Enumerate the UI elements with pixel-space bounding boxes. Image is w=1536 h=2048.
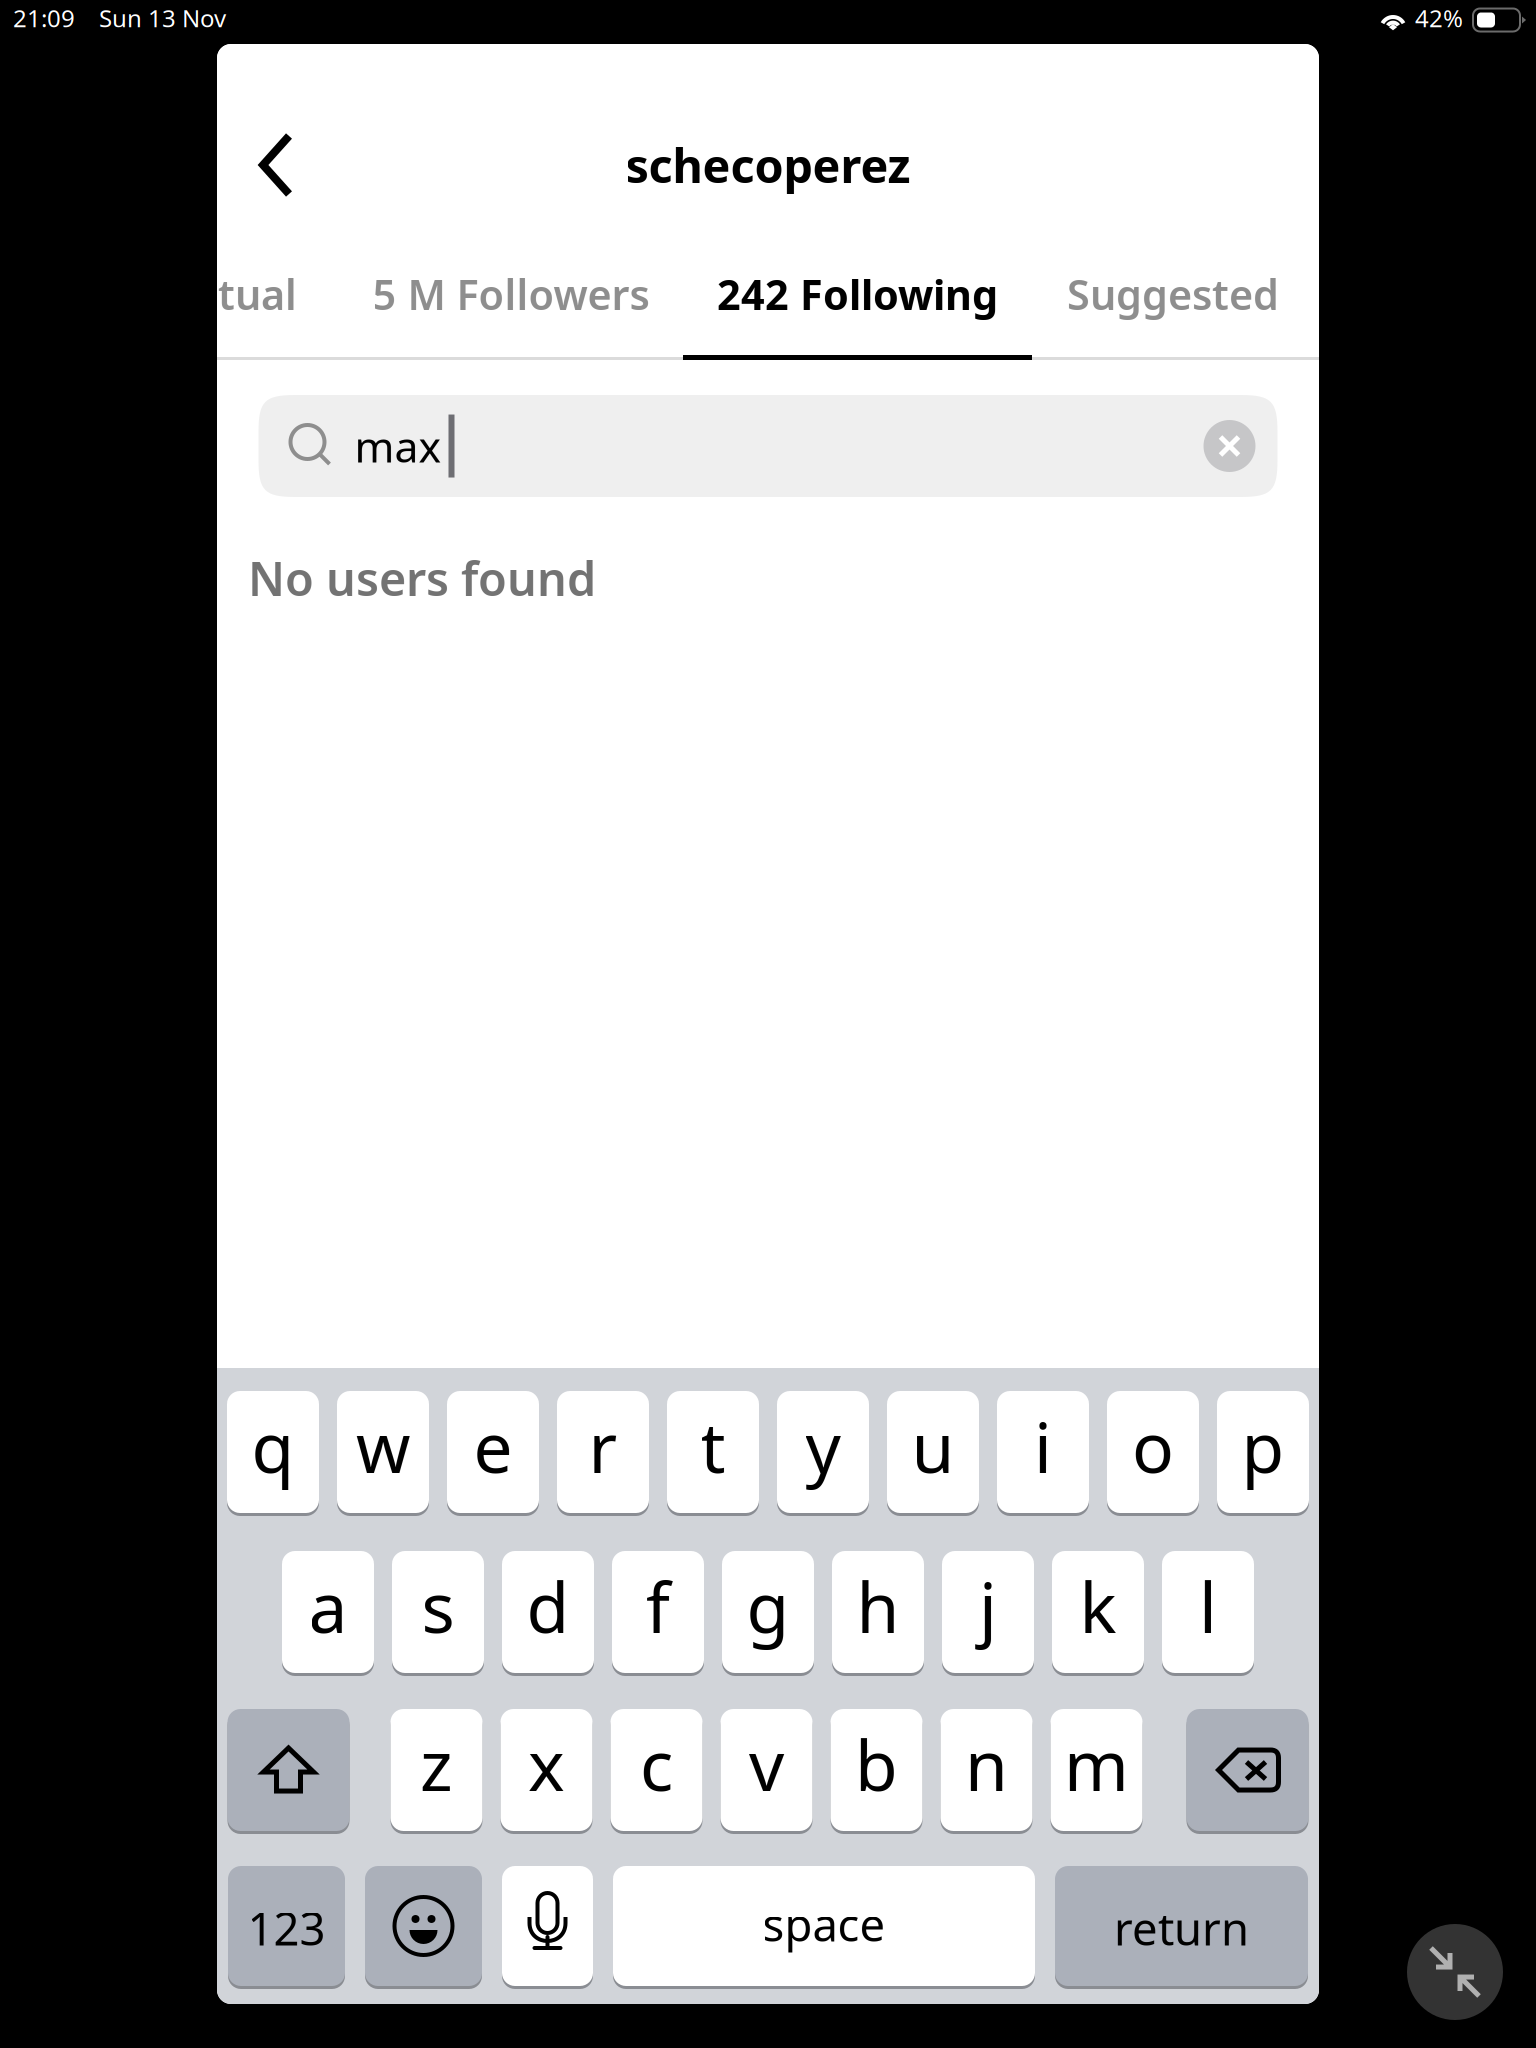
staticText: z	[420, 1718, 453, 1810]
button[interactable]: return	[1055, 1864, 1308, 1987]
button[interactable]: e	[447, 1389, 539, 1514]
staticText: m	[1064, 1718, 1129, 1810]
button[interactable]: p	[1217, 1389, 1309, 1514]
button[interactable]: x	[500, 1707, 592, 1832]
button[interactable]: v	[720, 1707, 812, 1832]
button[interactable]	[227, 1707, 349, 1832]
staticText: 42%	[1415, 2, 1463, 34]
staticText: u	[911, 1400, 954, 1492]
staticText: Suggested	[1067, 267, 1279, 321]
button[interactable]: w	[337, 1389, 429, 1514]
staticText: w	[356, 1400, 410, 1492]
staticText: 21:09	[13, 2, 75, 34]
staticText: o	[1132, 1400, 1174, 1492]
button[interactable]: o	[1107, 1389, 1199, 1514]
staticText: s	[421, 1560, 454, 1652]
button[interactable]: 242 Following	[683, 240, 1032, 348]
staticText: 123	[247, 1898, 325, 1958]
button[interactable]: k	[1052, 1549, 1144, 1674]
button[interactable]	[365, 1864, 482, 1987]
staticText: i	[1034, 1400, 1052, 1492]
button[interactable]: t	[667, 1389, 759, 1514]
staticText: c	[640, 1718, 673, 1810]
button[interactable]: r	[557, 1389, 649, 1514]
staticText: l	[1199, 1560, 1217, 1652]
button[interactable]: u	[887, 1389, 979, 1514]
staticText: 242 Following	[717, 267, 998, 321]
button[interactable]: l	[1162, 1549, 1254, 1674]
staticText: d	[526, 1560, 569, 1652]
button[interactable]: Back	[235, 122, 321, 208]
staticText: 5 M Followers	[372, 267, 649, 321]
button[interactable]: j	[942, 1549, 1034, 1674]
staticText: g	[746, 1560, 789, 1652]
button[interactable]: a	[282, 1549, 374, 1674]
button[interactable]: n	[940, 1707, 1032, 1832]
staticText: v	[749, 1718, 784, 1810]
button[interactable]: g	[722, 1549, 814, 1674]
staticText: No users found	[248, 547, 596, 609]
button[interactable]: d	[502, 1549, 594, 1674]
button[interactable]: q	[227, 1389, 319, 1514]
staticText: max	[354, 418, 441, 474]
staticText: Sun 13 Nov	[99, 2, 226, 34]
staticText: schecoperez	[625, 134, 910, 196]
button[interactable]: space	[613, 1864, 1035, 1987]
staticText: b	[855, 1718, 898, 1810]
staticText: r	[588, 1400, 617, 1492]
staticText: y	[805, 1400, 840, 1492]
button[interactable]	[502, 1864, 593, 1987]
button[interactable]: z	[390, 1707, 482, 1832]
staticText: t	[700, 1400, 725, 1492]
button[interactable]: Exit full screen	[1407, 1924, 1503, 2020]
staticText: return	[1114, 1898, 1249, 1958]
staticText: k	[1079, 1560, 1116, 1652]
staticText: j	[979, 1560, 997, 1652]
button[interactable]: 123	[228, 1864, 345, 1987]
button[interactable]: i	[997, 1389, 1089, 1514]
staticText: x	[528, 1718, 565, 1810]
staticText: space	[762, 1894, 885, 1954]
button[interactable]: f	[612, 1549, 704, 1674]
button[interactable]: b	[830, 1707, 922, 1832]
button[interactable]: Clear search	[1199, 416, 1259, 476]
button[interactable]: y	[777, 1389, 869, 1514]
button[interactable]: utual	[157, 240, 297, 348]
button[interactable]: 5 M Followers	[361, 240, 661, 348]
button[interactable]	[1186, 1707, 1308, 1832]
staticText: f	[646, 1560, 670, 1652]
staticText: utual	[192, 267, 297, 321]
staticText: e	[473, 1400, 512, 1492]
button[interactable]: s	[392, 1549, 484, 1674]
staticText: h	[856, 1560, 899, 1652]
staticText: n	[965, 1718, 1008, 1810]
button[interactable]: c	[610, 1707, 702, 1832]
staticText: a	[308, 1560, 347, 1652]
staticText: q	[251, 1400, 294, 1492]
staticText: p	[1241, 1400, 1284, 1492]
button[interactable]: Suggested	[1043, 240, 1303, 348]
button[interactable]: m	[1050, 1707, 1142, 1832]
button[interactable]: h	[832, 1549, 924, 1674]
